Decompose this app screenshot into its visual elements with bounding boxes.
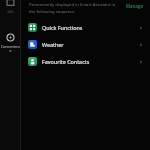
staticText: Weather <box>42 41 138 48</box>
button[interactable]: Favourite Contacts <box>21 53 150 70</box>
other: Convenience <box>5 32 16 43</box>
staticText: Permanently displayed in Smart Assistant… <box>29 2 121 14</box>
staticText: Life <box>0 9 21 14</box>
button[interactable]: Weather <box>21 36 150 53</box>
other: Open <box>138 25 144 31</box>
button[interactable]: Convenience <box>0 30 21 55</box>
staticText: Favourite Contacts <box>42 58 138 65</box>
staticText: Manage <box>126 3 144 9</box>
button[interactable]: Quick Functions <box>21 19 150 36</box>
other: Open <box>138 42 144 48</box>
other: Open <box>138 59 144 65</box>
staticText: Quick Functions <box>42 24 138 31</box>
other: Life <box>5 0 16 8</box>
staticText: Convenience <box>0 44 21 53</box>
button[interactable]: Manage <box>124 2 146 10</box>
button[interactable]: Life <box>0 0 21 16</box>
